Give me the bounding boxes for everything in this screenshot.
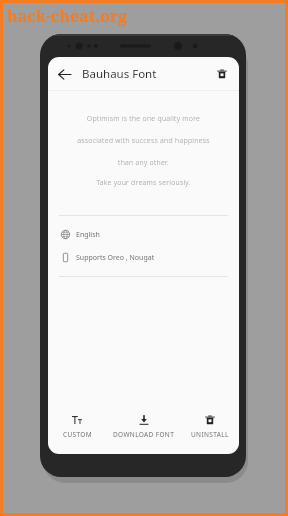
staticText: Bauhaus Font	[82, 66, 157, 82]
staticText: Optimism is the one quality more	[58, 114, 229, 124]
staticText: Supports Oreo , Nougat	[76, 253, 155, 263]
button[interactable]: CUSTOM	[48, 405, 106, 449]
other: Language	[61, 230, 70, 239]
staticText: UNINSTALL	[191, 430, 229, 439]
staticText: DOWNLOAD FONT	[113, 430, 175, 439]
button[interactable]: DOWNLOAD FONT	[106, 405, 181, 449]
staticText: Take your dreams seriously.	[58, 178, 229, 188]
staticText: English	[76, 230, 100, 240]
staticText: CUSTOM	[63, 430, 92, 439]
other: Compatibility	[61, 253, 70, 262]
staticText: associated with success and happiness	[58, 136, 229, 146]
button[interactable]: Compatibility	[48, 249, 239, 266]
button[interactable]: Delete font	[210, 62, 234, 86]
button[interactable]: UNINSTALL	[181, 405, 239, 449]
staticText: than any other.	[58, 158, 229, 168]
button[interactable]: Language	[48, 226, 239, 243]
button[interactable]: Back	[51, 61, 77, 87]
staticText: hack-cheat.org	[7, 5, 128, 27]
